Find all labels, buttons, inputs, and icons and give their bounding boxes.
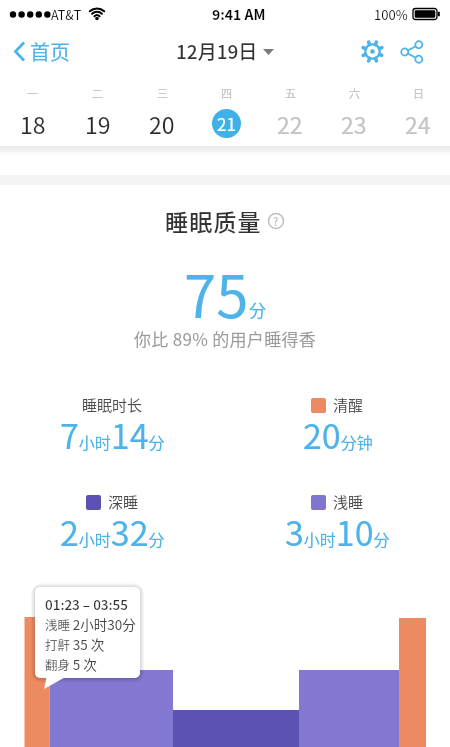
button[interactable] [401, 41, 423, 63]
staticText: 六 [349, 85, 360, 101]
staticText: 20分钟 [303, 410, 373, 459]
staticText: 21 [217, 111, 236, 136]
button[interactable]: 浅睡 [311, 491, 364, 513]
staticText: 23 [341, 107, 367, 139]
staticText: 浅睡 [333, 491, 364, 513]
staticText: 二 [92, 85, 103, 101]
staticText: 四 [221, 85, 232, 101]
button[interactable] [361, 40, 384, 63]
staticText: 睡眠质量 [165, 204, 262, 237]
button[interactable]: 首页 [13, 37, 70, 66]
button[interactable]: 睡眠时长 [82, 394, 143, 416]
staticText: 2小时32分 [60, 507, 165, 556]
staticText: 翻身 5 次 [45, 654, 97, 674]
button[interactable]: 24 [405, 107, 431, 139]
staticText: 75 [184, 251, 249, 335]
button[interactable]: 23 [341, 107, 367, 139]
staticText: 分 [249, 297, 266, 322]
button[interactable]: 21 [212, 109, 241, 138]
staticText: 22 [277, 107, 303, 139]
button[interactable]: 22 [277, 107, 303, 139]
staticText: 五 [285, 85, 296, 101]
staticText: 深睡 [108, 491, 139, 513]
staticText: 7小时14分 [60, 410, 165, 459]
staticText: 一 [27, 85, 38, 101]
staticText: 首页 [30, 37, 70, 66]
staticText: 100% [374, 5, 408, 24]
staticText: AT&T [51, 5, 82, 23]
staticText: 9:41 AM [212, 4, 266, 24]
staticText: 打鼾 35 次 [45, 634, 105, 654]
button[interactable]: 深睡 [86, 491, 139, 513]
button[interactable]: ? [267, 212, 285, 230]
button[interactable]: 20 [149, 107, 175, 139]
button[interactable]: 12月19日 [176, 37, 274, 65]
staticText: 18 [20, 107, 46, 139]
staticText: 19 [85, 107, 111, 139]
staticText: 清醒 [333, 394, 364, 416]
staticText: 浅睡 2小时30分 [45, 614, 136, 634]
staticText: 24 [405, 107, 431, 139]
staticText: 3小时10分 [285, 507, 390, 556]
staticText: 三 [157, 85, 168, 101]
button[interactable]: 清醒 [311, 394, 364, 416]
button[interactable]: 18 [20, 107, 46, 139]
staticText: 01:23 – 03:55 [45, 594, 128, 614]
staticText: 12月19日 [176, 37, 258, 65]
staticText: ? [273, 213, 279, 229]
staticText: 日 [413, 85, 424, 101]
staticText: 睡眠时长 [82, 394, 143, 416]
staticText: 你比 89% 的用户睡得香 [134, 326, 317, 351]
button[interactable]: 19 [85, 107, 111, 139]
staticText: 20 [149, 107, 175, 139]
